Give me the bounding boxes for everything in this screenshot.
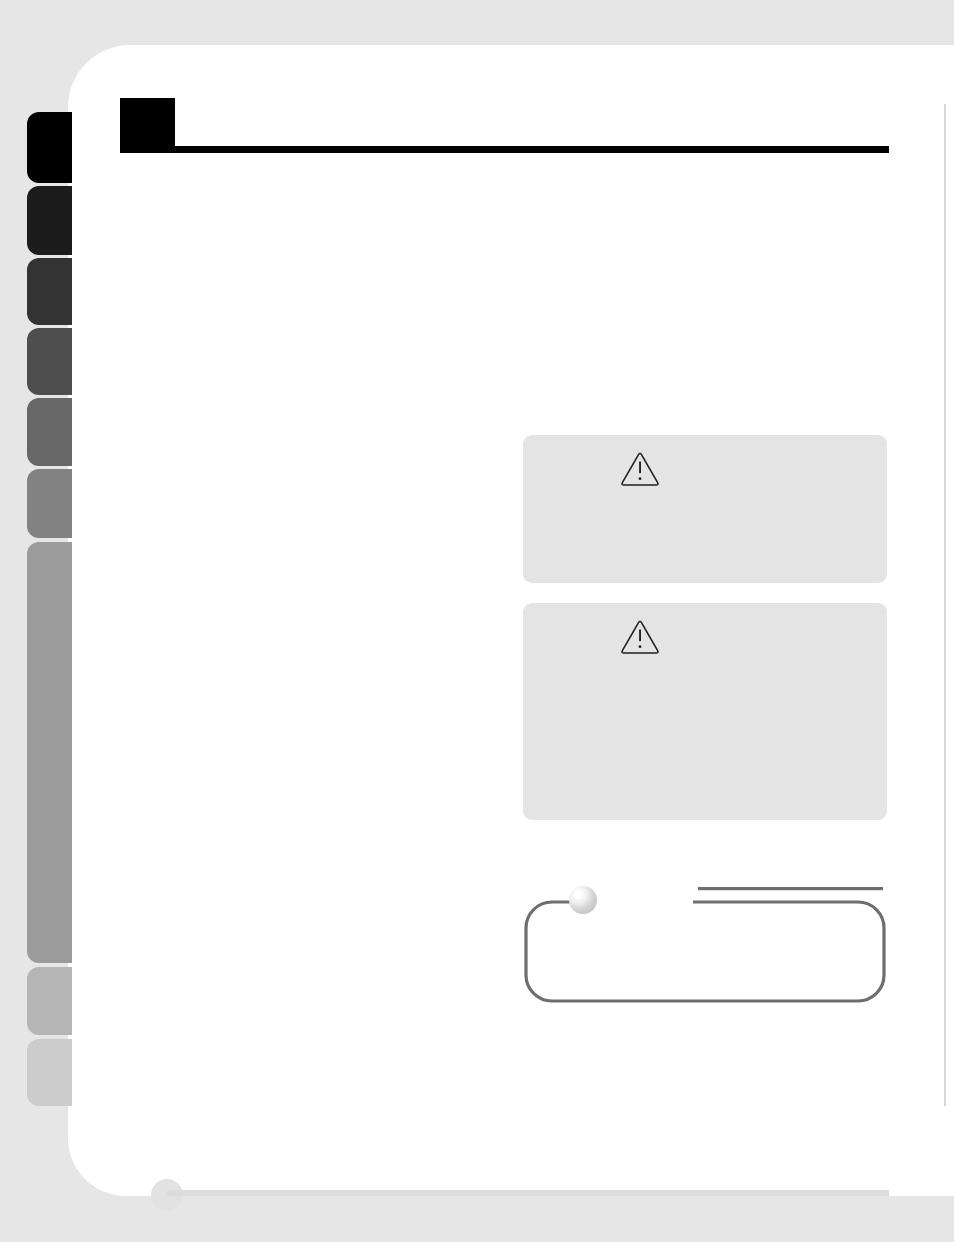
button[interactable]: Section tab 1	[27, 112, 72, 183]
button[interactable]: Section tab 9	[27, 1039, 72, 1106]
button[interactable]: Section tab 3	[27, 258, 72, 325]
button[interactable]: Note	[523, 880, 887, 1005]
button[interactable]: Section tab 5	[27, 398, 72, 466]
button[interactable]: Section tab 4	[27, 328, 72, 395]
button[interactable]: Section tab 7	[27, 542, 72, 963]
button[interactable]: Caution notice	[523, 435, 887, 583]
button[interactable]: Section tab 6	[27, 469, 72, 538]
button[interactable]: Section tab 8	[27, 967, 72, 1035]
button[interactable]: Section tab 2	[27, 186, 72, 255]
button[interactable]: Warning notice	[523, 603, 887, 820]
